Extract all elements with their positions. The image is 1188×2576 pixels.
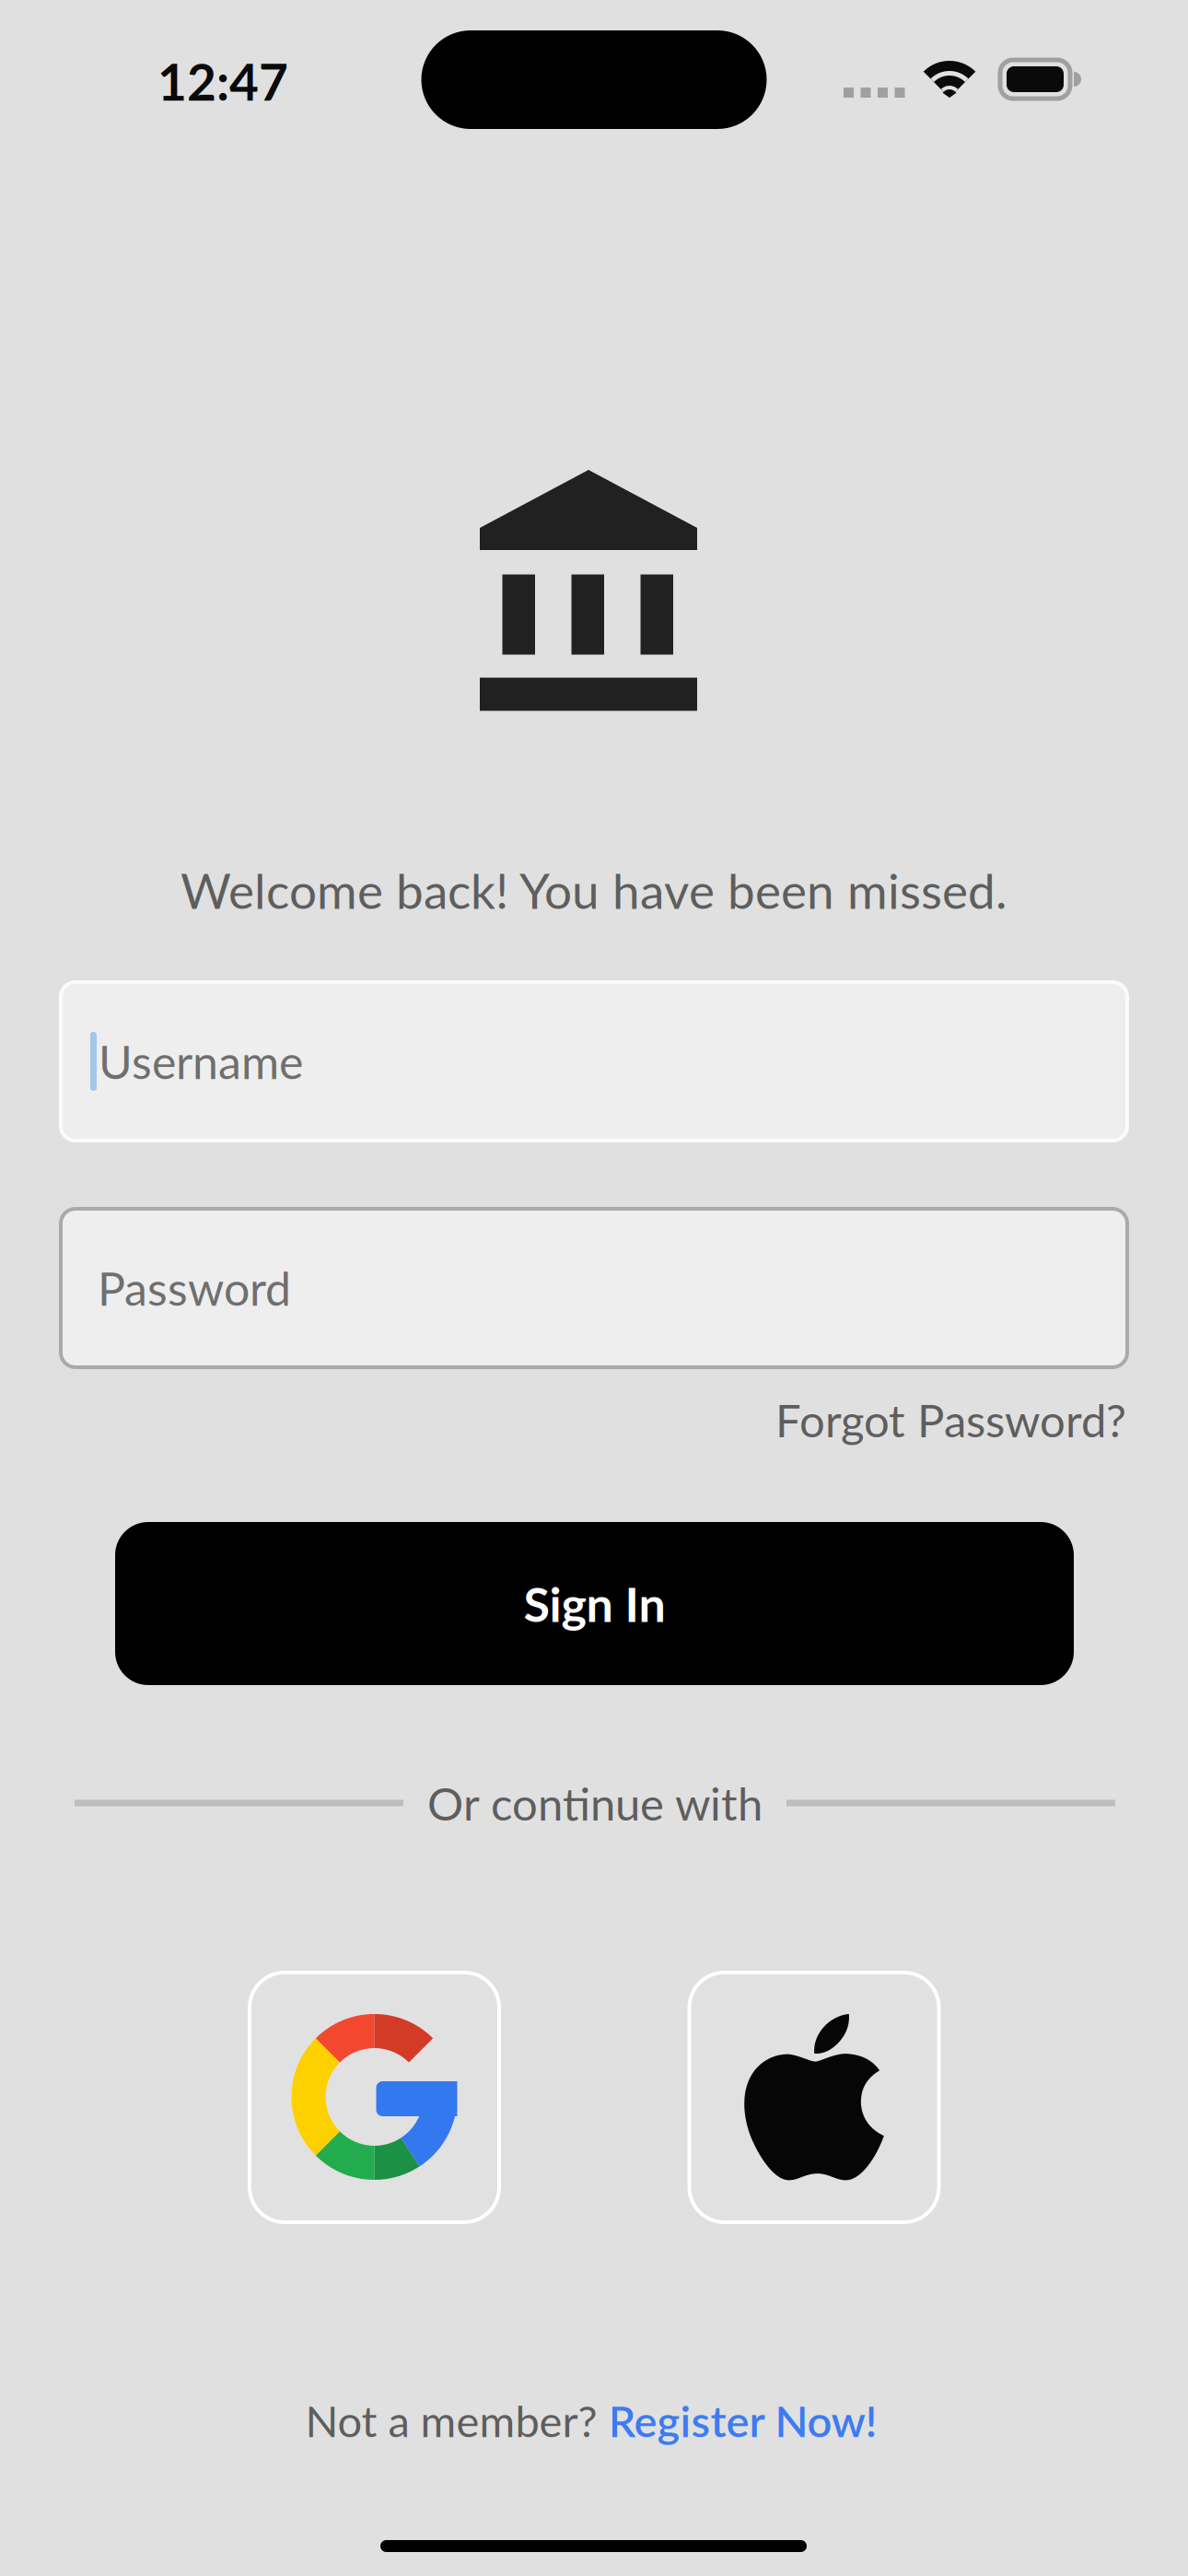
button[interactable]: Register Now! — [608, 2394, 877, 2446]
staticText: 12:47 — [157, 51, 288, 111]
staticText: Or continue with — [427, 1776, 763, 1830]
staticText: Welcome back! You have been missed. — [181, 861, 1007, 919]
staticText: Password — [98, 1260, 291, 1316]
button[interactable]: Forgot Password? — [775, 1393, 1126, 1447]
button[interactable]: Password — [61, 1209, 1127, 1367]
button[interactable] — [689, 1973, 939, 2222]
staticText: Sign In — [524, 1575, 665, 1632]
staticText: Forgot Password? — [775, 1393, 1126, 1447]
staticText: Username — [99, 1034, 303, 1089]
button[interactable] — [250, 1973, 499, 2222]
button[interactable]: Sign In — [115, 1522, 1074, 1685]
staticText: Not a member? — [305, 2394, 597, 2446]
staticText: Register Now! — [608, 2394, 877, 2446]
button[interactable]: Username — [61, 982, 1127, 1141]
